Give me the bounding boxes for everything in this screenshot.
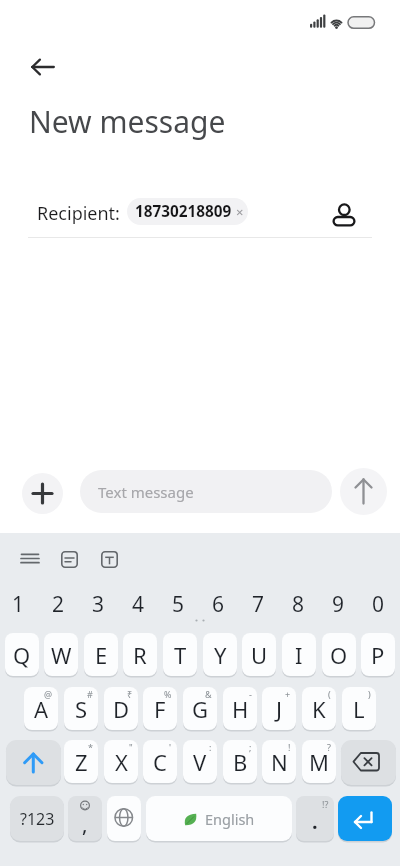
button[interactable]: . [296,796,334,841]
button[interactable] [330,196,360,230]
staticText: English [205,809,255,829]
staticText: ' [169,741,172,753]
button[interactable]: 4 [121,586,155,622]
staticText: J [276,694,283,724]
button[interactable] [26,53,60,81]
button[interactable]: P [361,633,395,676]
staticText: P [371,640,385,670]
button[interactable]: H [223,687,257,730]
staticText: 3 [92,590,105,619]
button[interactable]: 8 [281,586,315,622]
button[interactable]: Q [5,633,39,676]
button[interactable]: C [143,740,177,783]
button[interactable]: S [64,687,98,730]
button[interactable] [107,796,141,841]
button[interactable]: N [262,740,296,783]
button[interactable]: A [24,687,58,730]
button[interactable]: ?123 [10,796,64,841]
staticText: × [236,203,244,221]
staticText: ? [327,741,331,753]
button[interactable]: X [104,740,138,783]
button[interactable]: Z [64,740,98,783]
button[interactable] [6,740,61,785]
button[interactable]: Text message [80,470,332,513]
staticText: S [75,694,88,724]
button[interactable] [19,550,41,568]
button[interactable] [61,551,78,568]
button[interactable] [101,551,118,568]
button[interactable]: 6 [201,586,235,622]
staticText: Q [13,640,31,670]
staticText: M [309,747,329,777]
button[interactable]: F [143,687,177,730]
staticText: " [129,741,133,753]
staticText: ( [328,688,331,700]
staticText: G [192,694,209,724]
staticText: I [295,640,303,670]
staticText: 0 [372,590,385,619]
staticText: H [232,694,249,724]
staticText: & [205,688,212,700]
staticText: O [330,640,348,670]
button[interactable]: 1 [1,586,35,622]
staticText: 7 [252,590,265,619]
staticText: A [34,694,49,724]
staticText: B [233,747,248,777]
staticText: Text message [98,482,194,502]
button[interactable]: 5 [161,586,195,622]
staticText: ! [288,741,291,753]
staticText: * [88,741,93,753]
staticText: : [209,741,212,753]
staticText: !? [322,798,329,810]
button[interactable]: M [302,740,336,783]
button[interactable]: 7 [241,586,275,622]
staticText: F [154,694,166,724]
staticText: + [285,688,291,700]
button[interactable]: E [84,633,118,676]
button[interactable]: O [322,633,356,676]
button[interactable]: R [123,633,157,676]
staticText: E [95,640,108,670]
button[interactable]: D [104,687,138,730]
button[interactable] [22,473,63,514]
button[interactable]: I [282,633,316,676]
button[interactable]: K [302,687,336,730]
button[interactable]: 3 [81,586,115,622]
staticText: L [353,694,365,724]
staticText: ; [249,741,252,753]
button[interactable]: U [242,633,276,676]
button[interactable]: English [146,796,292,841]
staticText: 1 [12,590,25,619]
button[interactable]: B [223,740,257,783]
button[interactable]: 2 [41,586,75,622]
staticText: 18730218809 [135,201,232,222]
button[interactable]: 9 [321,586,355,622]
button[interactable] [341,740,396,785]
button[interactable]: , [68,796,102,841]
staticText: ₹ [127,688,133,700]
button[interactable]: 18730218809 [127,198,248,225]
staticText: 2 [52,590,65,619]
staticText: ?123 [20,808,55,830]
button[interactable]: V [183,740,217,783]
button[interactable]: Y [203,633,237,676]
staticText: . [312,808,318,835]
staticText: Recipient: [37,201,120,226]
staticText: 4 [132,590,145,619]
button[interactable]: W [44,633,78,676]
staticText: D [113,694,130,724]
button[interactable] [338,796,392,841]
staticText: Z [75,747,88,777]
staticText: New message [29,101,226,142]
staticText: W [51,640,72,670]
button[interactable]: G [183,687,217,730]
button[interactable] [340,468,387,515]
button[interactable]: 0 [361,586,395,622]
button[interactable]: L [342,687,376,730]
button[interactable]: T [163,633,197,676]
staticText: , [82,811,88,838]
staticText: V [193,747,207,777]
staticText: @ [44,688,53,700]
button[interactable]: J [262,687,296,730]
staticText: Y [214,640,227,670]
